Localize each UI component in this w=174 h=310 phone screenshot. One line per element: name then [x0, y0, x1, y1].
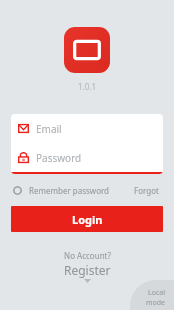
staticText: Email [36, 122, 62, 136]
staticText: Password [36, 151, 82, 165]
button[interactable]: Password [11, 143, 163, 172]
staticText: mode [146, 298, 166, 308]
staticText: Forgot [134, 185, 159, 196]
staticText: Login [72, 212, 103, 227]
button[interactable]: Login [11, 206, 163, 232]
staticText: Local [148, 288, 165, 298]
button[interactable]: No Account? [54, 248, 121, 285]
staticText: 1.0.1 [78, 81, 97, 92]
button[interactable]: Forgot [132, 183, 161, 198]
staticText: No Account? [64, 250, 111, 261]
staticText: Register [64, 262, 111, 278]
button[interactable]: Email [11, 114, 163, 143]
button[interactable]: Local mode [130, 280, 174, 310]
button[interactable]: Remember password [13, 184, 110, 197]
staticText: Remember password [29, 185, 110, 196]
